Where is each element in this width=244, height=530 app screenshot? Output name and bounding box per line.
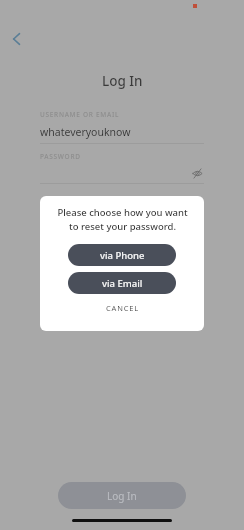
button[interactable]: via Email [68, 272, 176, 294]
staticText: CANCEL [106, 303, 139, 313]
staticText: USERNAME OR EMAIL [40, 110, 120, 119]
button[interactable]: Show password [190, 166, 204, 180]
staticText: Log In [107, 489, 137, 503]
staticText: Please choose how you want to reset your… [57, 206, 188, 233]
staticText: whateveryouknow [40, 125, 131, 139]
staticText: PASSWORD [40, 152, 81, 161]
staticText: via Email [102, 277, 143, 290]
button[interactable]: via Phone [68, 244, 176, 266]
button[interactable]: Back [2, 24, 32, 54]
staticText: Log In [102, 72, 143, 90]
button[interactable]: CANCEL [98, 301, 147, 315]
button[interactable]: Log In [58, 482, 186, 509]
staticText: via Phone [100, 249, 145, 262]
